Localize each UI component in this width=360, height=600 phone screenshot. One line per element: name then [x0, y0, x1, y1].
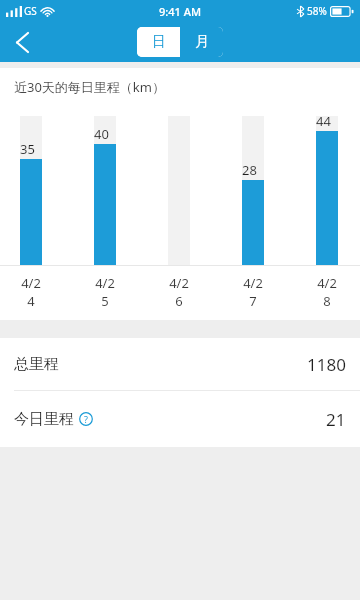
staticText: 9:41 AM [159, 4, 202, 19]
staticText: GS [24, 4, 37, 18]
staticText: 21 [326, 408, 346, 431]
button[interactable]: Help [79, 412, 93, 426]
staticText: 4/25 [94, 274, 116, 310]
staticText: 月 [195, 33, 209, 51]
staticText: 4/26 [168, 274, 190, 310]
staticText: 4/27 [242, 274, 264, 310]
staticText: 近30天的每日里程（km） [14, 78, 165, 96]
button[interactable]: 总里程 [0, 338, 360, 390]
staticText: 44 [316, 112, 331, 130]
staticText: ? [84, 413, 88, 425]
staticText: 58% [307, 4, 327, 18]
button[interactable]: 日 [137, 27, 180, 57]
staticText: 日 [152, 33, 166, 51]
staticText: 1180 [307, 353, 346, 376]
staticText: 4/28 [316, 274, 338, 310]
staticText: 今日里程 [14, 410, 74, 429]
staticText: 总里程 [14, 355, 59, 374]
staticText: 40 [94, 125, 109, 143]
button[interactable]: 今日里程 [0, 391, 360, 447]
button[interactable]: 月 [180, 27, 223, 57]
staticText: 4/24 [20, 274, 42, 310]
staticText: 28 [242, 161, 257, 179]
staticText: 35 [20, 140, 35, 158]
button[interactable]: Back [0, 22, 44, 62]
